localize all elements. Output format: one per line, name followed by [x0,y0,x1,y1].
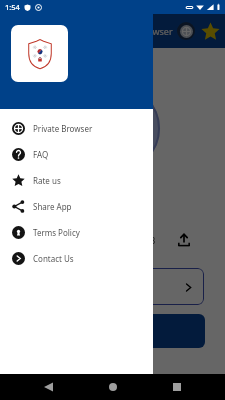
button[interactable]: Browser [177,22,195,40]
staticText: FAQ [33,149,49,160]
button[interactable]: Share App [0,193,153,219]
button[interactable]: Connect [21,268,204,305]
button[interactable]: Recents [167,377,187,397]
button[interactable]: Terms Policy [0,219,153,245]
staticText: Share App [33,201,72,212]
button[interactable]: Favorites [199,20,221,42]
staticText: Private Browser [33,123,93,134]
button[interactable]: Contact Us [0,245,153,271]
staticText: 1:54 [5,2,20,12]
button[interactable]: FAQ [0,141,153,167]
button[interactable]: Private Browser [0,115,153,141]
staticText: Terms Policy [33,227,80,238]
button[interactable]: Settings [21,314,205,348]
staticText: Private Browser [106,25,173,37]
button[interactable]: Rate us [0,167,153,193]
staticText: 0 MB [136,235,156,246]
staticText: Contact Us [33,253,74,264]
button[interactable]: Back [38,377,58,397]
button[interactable]: Menu [24,22,42,40]
button[interactable]: Home [103,377,123,397]
staticText: Rate us [33,175,61,186]
